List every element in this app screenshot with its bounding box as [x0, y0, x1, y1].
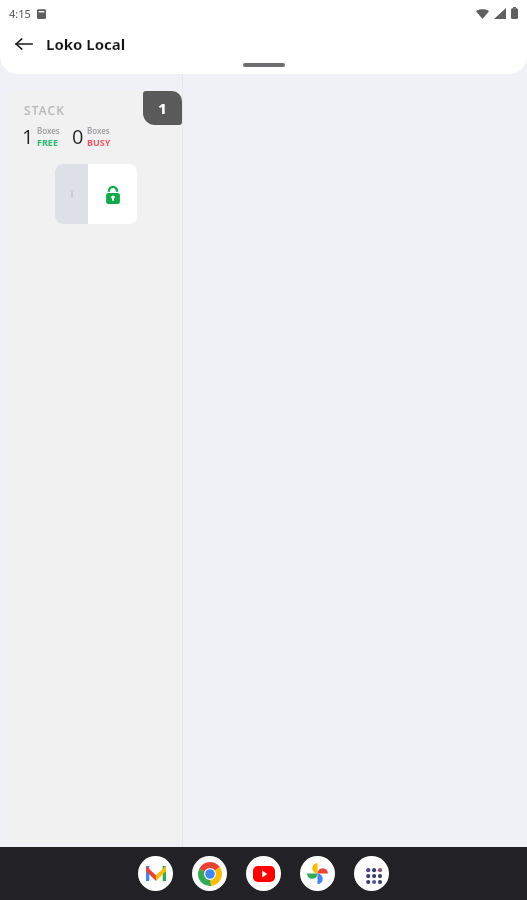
button[interactable]: All apps: [354, 856, 389, 891]
staticText: 1: [22, 123, 34, 150]
button[interactable]: YouTube: [246, 856, 281, 891]
button[interactable]: Photos: [300, 856, 335, 891]
button[interactable]: Box locked: [55, 164, 137, 224]
button[interactable]: Chrome: [192, 856, 227, 891]
staticText: Boxes: [37, 125, 60, 136]
staticText: 1: [158, 98, 167, 118]
staticText: Boxes: [87, 125, 110, 136]
button[interactable]: Back: [6, 26, 42, 62]
staticText: 4:15: [9, 6, 31, 21]
staticText: Loko Local: [46, 34, 126, 54]
staticText: FREE: [37, 136, 58, 148]
button[interactable]: STACK: [10, 90, 182, 842]
staticText: STACK: [24, 102, 65, 118]
staticText: BUSY: [87, 136, 111, 148]
button[interactable]: Gmail: [138, 856, 173, 891]
staticText: 0: [72, 123, 84, 150]
